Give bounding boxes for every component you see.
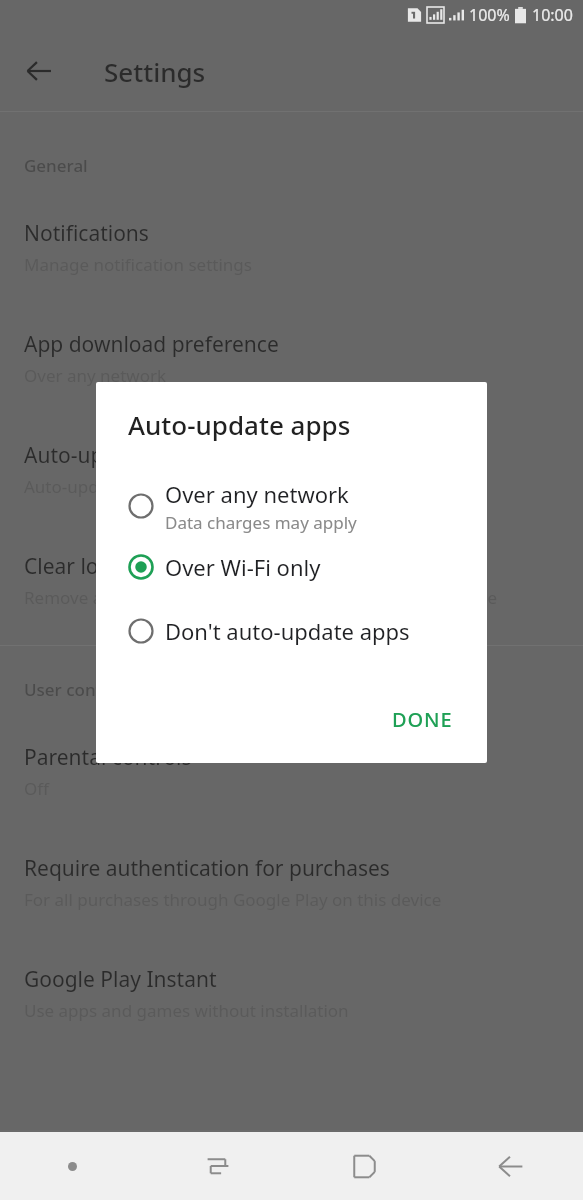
- staticText: Clear local search history: [24, 552, 270, 581]
- button[interactable]: Over any network: [96, 474, 487, 538]
- button[interactable]: Parental controls: [0, 707, 583, 800]
- button[interactable]: Back: [437, 1132, 583, 1200]
- staticText: Don't auto-update apps: [165, 616, 410, 646]
- staticText: Auto-update apps over Wi-Fi only: [24, 475, 289, 498]
- button[interactable]: Home: [291, 1132, 437, 1200]
- staticText: Manage notification settings: [24, 253, 252, 276]
- staticText: Auto-update apps: [128, 407, 351, 442]
- button[interactable]: App download preference: [0, 276, 583, 387]
- staticText: 100%: [469, 4, 510, 26]
- button[interactable]: Notifications: [0, 1132, 145, 1200]
- staticText: Data charges may apply: [165, 511, 357, 534]
- button[interactable]: Auto-update apps: [0, 387, 583, 498]
- staticText: Off: [24, 777, 49, 800]
- button[interactable]: Don't auto-update apps: [96, 608, 487, 654]
- staticText: Google Play Instant: [24, 965, 217, 994]
- button[interactable]: Require authentication for purchases: [0, 800, 583, 911]
- button[interactable]: Google Play Instant: [0, 911, 583, 1022]
- button[interactable]: Clear local search history: [0, 498, 583, 609]
- staticText: Over Wi-Fi only: [165, 552, 321, 582]
- button[interactable]: DONE: [372, 694, 473, 745]
- staticText: Auto-update apps: [24, 441, 201, 470]
- staticText: General: [24, 154, 583, 177]
- staticText: Settings: [104, 54, 206, 89]
- staticText: Require authentication for purchases: [24, 854, 390, 883]
- staticText: Over any network: [165, 479, 349, 509]
- button[interactable]: Over Wi-Fi only: [96, 538, 487, 596]
- button[interactable]: Notifications: [0, 183, 583, 276]
- staticText: For all purchases through Google Play on…: [24, 888, 442, 911]
- button[interactable]: Back: [9, 41, 69, 101]
- staticText: Notifications: [24, 219, 149, 248]
- staticText: Remove all the searches you have perform…: [24, 586, 498, 609]
- staticText: Over any network: [24, 364, 167, 387]
- staticText: DONE: [392, 706, 453, 733]
- staticText: Parental controls: [24, 743, 192, 772]
- button[interactable]: Recents: [145, 1132, 291, 1200]
- staticText: App download preference: [24, 330, 279, 359]
- staticText: User controls: [24, 678, 583, 701]
- staticText: 10:00: [532, 4, 573, 26]
- staticText: Use apps and games without installation: [24, 999, 349, 1022]
